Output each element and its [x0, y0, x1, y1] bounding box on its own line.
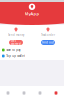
- staticText: Get started: [11, 39, 21, 46]
- staticText: MyApp: [24, 11, 39, 16]
- button[interactable]: Account: [48, 86, 64, 100]
- button[interactable]: Scan to pay: [0, 47, 64, 53]
- button[interactable]: Top up wallet: [0, 53, 64, 59]
- staticText: Top up wallet: [6, 54, 25, 58]
- button[interactable]: Orders: [32, 86, 48, 100]
- button[interactable]: Home: [0, 86, 16, 100]
- button[interactable]: Find out: [41, 40, 55, 45]
- button[interactable]: Explore: [16, 86, 32, 100]
- staticText: Find out: [42, 41, 54, 44]
- staticText: Track order: [41, 33, 55, 37]
- button[interactable]: Get started: [9, 40, 23, 45]
- staticText: Scan to pay: [6, 48, 20, 52]
- staticText: Send money: [8, 33, 24, 37]
